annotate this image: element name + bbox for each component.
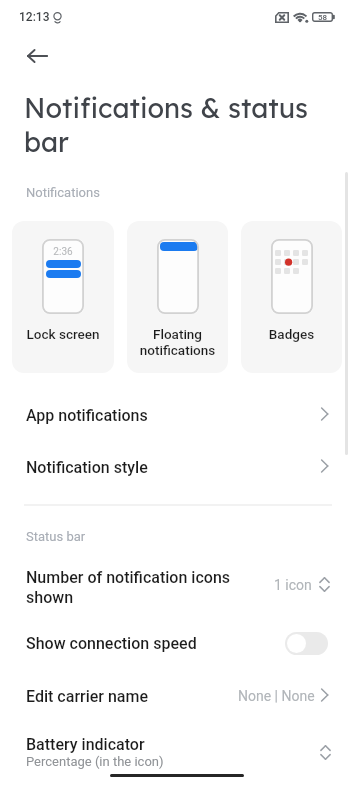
button[interactable]: Number of notification icons shown xyxy=(0,556,355,618)
button[interactable]: Floating notifications xyxy=(127,221,228,373)
staticText: Edit carrier name xyxy=(26,687,238,706)
staticText: App notifications xyxy=(26,406,320,425)
staticText: Notifications & status bar xyxy=(24,91,316,159)
staticText: Status bar xyxy=(26,529,86,544)
staticText: Percentage (in the icon) xyxy=(26,754,164,769)
button[interactable]: App notifications xyxy=(0,389,355,441)
button[interactable]: Back xyxy=(13,32,61,80)
staticText: 2:36 xyxy=(42,246,84,258)
staticText: Badges xyxy=(241,326,342,342)
staticText: Show connection speed xyxy=(26,634,285,653)
staticText: 12:13 xyxy=(19,10,50,24)
staticText: None | None xyxy=(238,688,315,704)
staticText: Number of notification icons shown xyxy=(26,568,260,607)
button[interactable]: Edit carrier name xyxy=(0,670,355,722)
staticText: Lock screen xyxy=(12,326,114,342)
button[interactable]: Battery indicator xyxy=(0,726,355,778)
staticText: Battery indicator xyxy=(26,735,145,754)
staticText: 1 icon xyxy=(274,577,312,593)
button[interactable]: Badges xyxy=(241,221,342,373)
button[interactable]: 2:36 xyxy=(12,221,114,373)
button[interactable]: Notification style xyxy=(0,441,355,493)
staticText: 58 xyxy=(318,13,328,22)
staticText: Floating notifications xyxy=(127,326,228,359)
staticText: Notification style xyxy=(26,458,320,477)
button[interactable]: Show connection speed xyxy=(0,617,355,669)
staticText: Notifications xyxy=(26,185,100,200)
